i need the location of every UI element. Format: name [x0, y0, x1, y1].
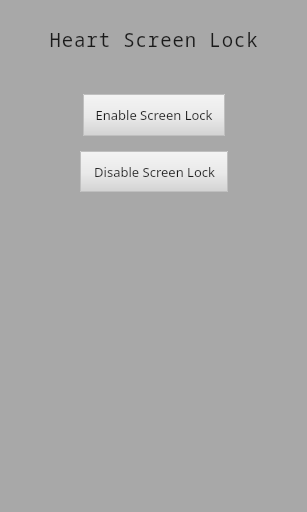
- button[interactable]: Enable Screen Lock: [83, 94, 225, 136]
- staticText: Heart Screen Lock: [49, 27, 259, 53]
- button[interactable]: Disable Screen Lock: [80, 151, 228, 192]
- staticText: Enable Screen Lock: [95, 106, 213, 124]
- staticText: Disable Screen Lock: [94, 163, 215, 181]
